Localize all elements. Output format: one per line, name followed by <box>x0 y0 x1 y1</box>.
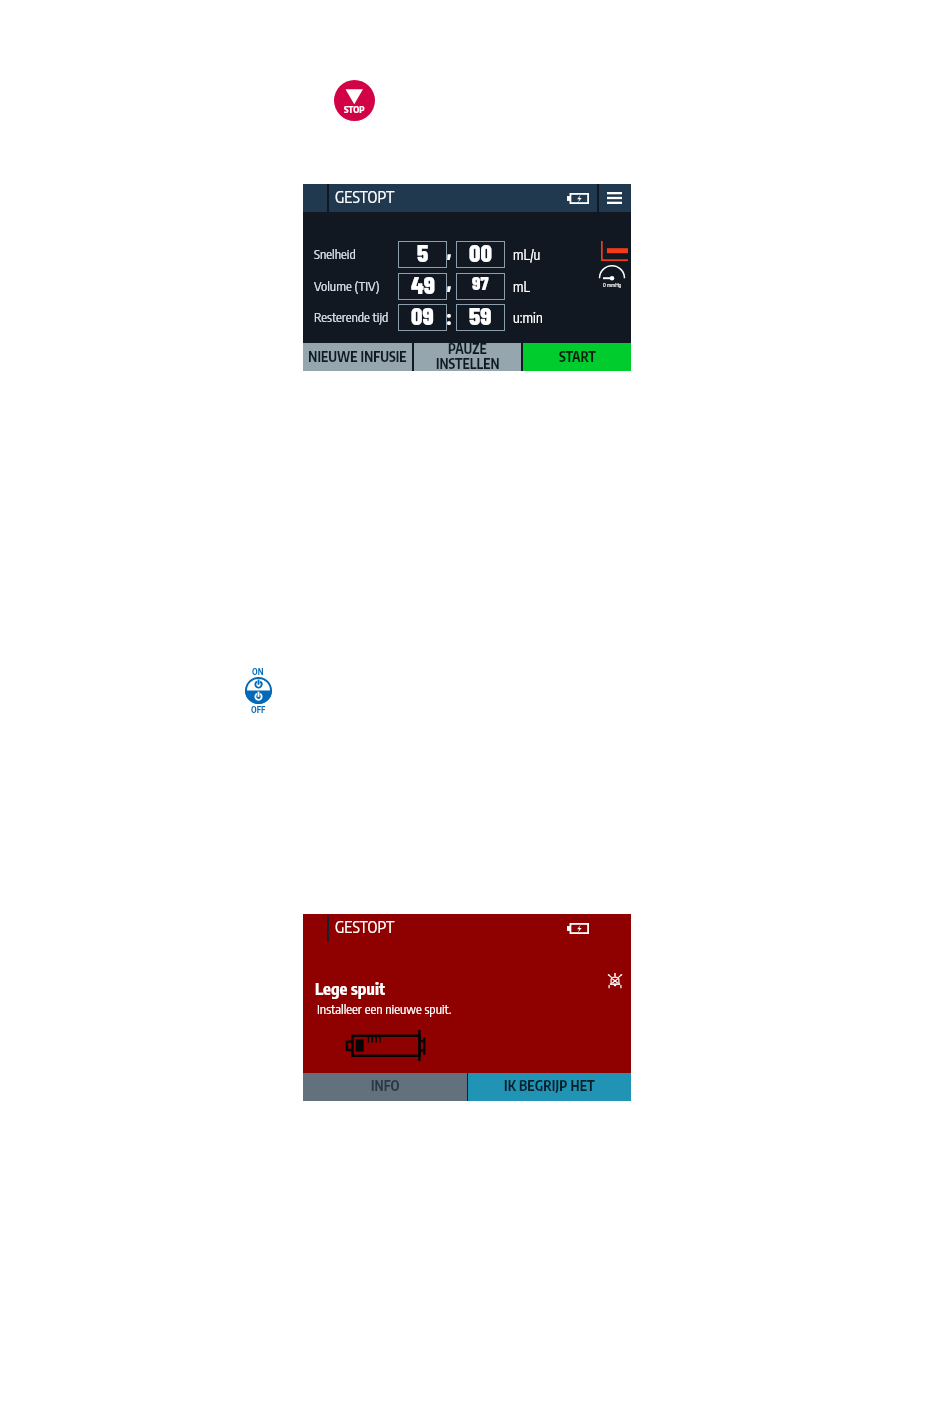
staticText: 97 <box>472 271 489 294</box>
button[interactable]: Stop <box>334 80 375 121</box>
button[interactable]: 59 <box>456 304 505 331</box>
button[interactable]: 5 <box>398 241 447 268</box>
staticText: GESTOPT <box>335 187 395 207</box>
staticText: , <box>444 237 454 262</box>
staticText: , <box>444 269 454 294</box>
staticText: INFO <box>371 1077 400 1094</box>
staticText: Volume (TIV) <box>314 278 380 294</box>
staticText: u:min <box>513 309 543 327</box>
button[interactable]: NIEUWE INFUSIE <box>303 343 412 371</box>
staticText: START <box>559 348 596 365</box>
staticText: 5 <box>417 237 429 264</box>
staticText: 49 <box>411 269 435 296</box>
staticText: mL/u <box>513 246 541 264</box>
staticText: GESTOPT <box>335 917 395 937</box>
staticText: 09 <box>411 300 434 327</box>
staticText: NIEUWE INFUSIE <box>308 348 407 365</box>
staticText: 0 mmHg <box>598 281 626 288</box>
button[interactable]: PAUZE <box>414 343 521 371</box>
staticText: INSTELLEN <box>436 355 500 372</box>
button[interactable]: Menu <box>598 184 631 212</box>
staticText: PAUZE <box>448 340 487 357</box>
staticText: OFF <box>251 704 266 715</box>
staticText: 00 <box>469 237 492 264</box>
staticText: Resterende tijd <box>314 309 389 325</box>
button[interactable]: 09 <box>398 304 447 331</box>
staticText: ON <box>252 666 264 677</box>
button[interactable]: 00 <box>456 241 505 268</box>
staticText: IK BEGRIJP HET <box>504 1077 595 1094</box>
button[interactable]: On Off power button <box>243 666 273 715</box>
button[interactable]: 49 <box>398 273 447 300</box>
button[interactable]: Mute alarm <box>607 972 623 989</box>
staticText: : <box>444 304 454 329</box>
staticText: Snelheid <box>314 246 356 262</box>
button[interactable]: IK BEGRIJP HET <box>468 1073 631 1101</box>
staticText: mL <box>513 278 530 296</box>
staticText: 59 <box>469 300 492 327</box>
staticText: Lege spuit <box>315 978 385 999</box>
staticText: STOP <box>344 104 365 115</box>
staticText: Installeer een nieuwe spuit. <box>317 1001 452 1017</box>
button[interactable]: START <box>523 343 631 371</box>
button[interactable]: INFO <box>303 1073 467 1101</box>
button[interactable]: 97 <box>456 273 505 300</box>
